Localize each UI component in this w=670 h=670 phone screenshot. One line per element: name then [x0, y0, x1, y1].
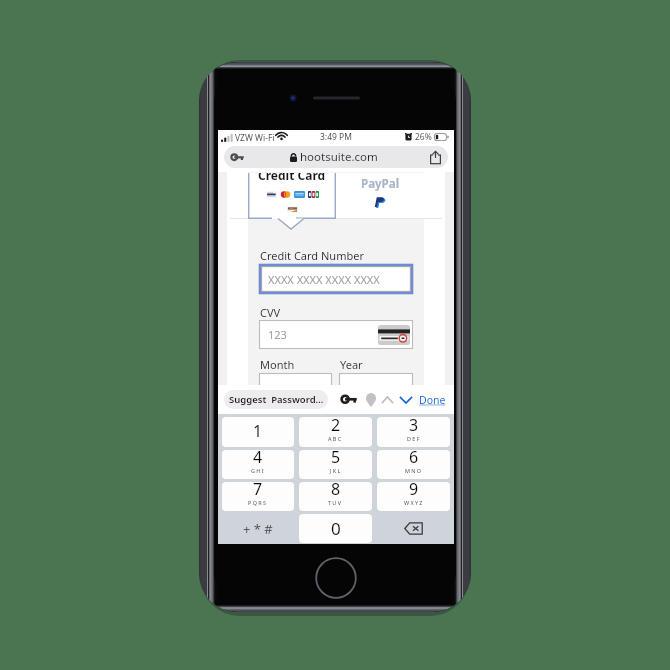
staticText: 26%: [415, 131, 432, 143]
other: Passwords: [230, 153, 244, 162]
button[interactable]: 2: [299, 417, 372, 447]
button[interactable]: Previous field: [380, 392, 395, 407]
button[interactable]: 7: [222, 482, 294, 511]
staticText: WXYZ: [404, 499, 424, 506]
button[interactable]: 9: [377, 482, 450, 511]
button[interactable]: Done: [419, 385, 447, 414]
button[interactable]: Delete: [377, 514, 450, 543]
staticText: 7: [253, 482, 263, 500]
button[interactable]: Location: [363, 391, 379, 408]
button[interactable]: Next field: [398, 392, 414, 407]
staticText: 123: [268, 327, 287, 342]
button[interactable]: Passwords: [224, 146, 448, 168]
button[interactable]: 6: [377, 450, 450, 479]
button[interactable]: 3: [377, 417, 450, 447]
button[interactable]: 123: [259, 320, 413, 349]
staticText: 5: [331, 450, 341, 468]
button[interactable]: 0: [299, 514, 372, 543]
staticText: VZW Wi-Fi: [235, 132, 275, 144]
button[interactable]: Credit Card: [248, 173, 336, 219]
button[interactable]: XXXX XXXX XXXX XXXX: [259, 264, 413, 294]
staticText: 4: [253, 450, 263, 468]
button[interactable]: [339, 373, 413, 402]
staticText: Year: [340, 357, 363, 372]
button[interactable]: Suggest Password…: [224, 390, 328, 409]
staticText: + * #: [243, 520, 273, 538]
staticText: TUV: [328, 499, 343, 506]
button[interactable]: 1: [222, 417, 294, 447]
staticText: PayPal: [361, 176, 400, 192]
button[interactable]: PayPal: [336, 173, 424, 219]
staticText: 0: [331, 517, 341, 540]
staticText: GHI: [251, 467, 265, 474]
staticText: Credit Card Number: [260, 248, 364, 263]
staticText: MNO: [405, 467, 423, 474]
staticText: PQRS: [248, 499, 268, 506]
staticText: Month: [260, 357, 295, 372]
staticText: DEF: [407, 435, 421, 442]
staticText: CVV: [260, 305, 281, 320]
button[interactable]: Passwords: [339, 392, 358, 407]
staticText: Suggest Password…: [229, 393, 324, 406]
staticText: 3:49 PM: [320, 131, 352, 143]
button[interactable]: 5: [299, 450, 372, 479]
staticText: 9: [409, 482, 419, 500]
staticText: XXXX XXXX XXXX XXXX: [268, 272, 380, 287]
button[interactable]: 4: [222, 450, 294, 479]
staticText: 1: [253, 420, 263, 442]
staticText: 6: [409, 450, 419, 468]
staticText: 2: [331, 417, 341, 436]
button[interactable]: 8: [299, 482, 372, 511]
staticText: Done: [419, 393, 446, 407]
button[interactable]: [259, 373, 332, 402]
staticText: Credit Card: [258, 173, 326, 183]
staticText: JKL: [330, 467, 342, 474]
other: Share: [430, 150, 441, 164]
staticText: 3: [409, 417, 419, 436]
button[interactable]: + * #: [222, 514, 294, 543]
staticText: 8: [331, 482, 341, 500]
staticText: hootsuite.com: [300, 149, 378, 165]
staticText: ABC: [328, 435, 343, 442]
